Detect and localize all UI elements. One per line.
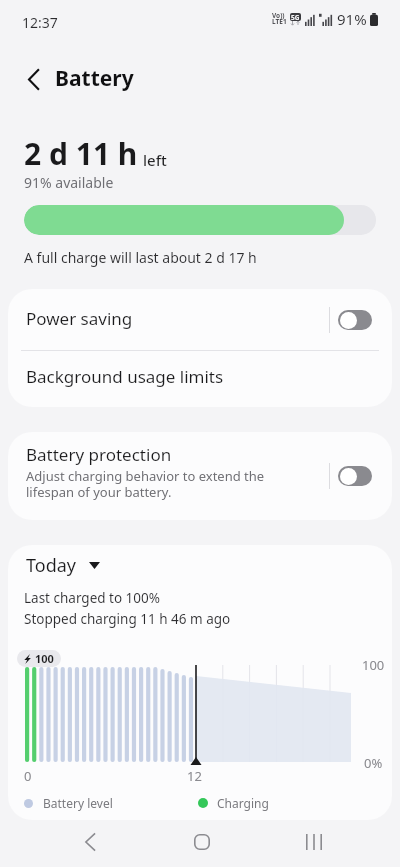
button[interactable]: Power saving [338, 310, 372, 330]
staticText: 12 [187, 767, 202, 785]
staticText: Power saving [26, 307, 133, 330]
staticText: Background usage limits [26, 365, 224, 388]
staticText: 91% available [24, 173, 114, 192]
staticText: 100 [362, 656, 385, 674]
button[interactable]: Back [63, 818, 116, 865]
staticText: Charging [217, 795, 269, 811]
staticText: Battery level [43, 795, 113, 811]
staticText: Battery [55, 64, 134, 93]
staticText: A full charge will last about 2 d 17 h [24, 248, 257, 267]
staticText: LTE1 [272, 17, 287, 26]
staticText: 12:37 [22, 13, 58, 32]
staticText: 100 [35, 651, 54, 666]
button[interactable]: Battery protection [8, 432, 392, 520]
staticText: Battery protection [26, 443, 172, 466]
staticText: Stopped charging 11 h 46 m ago [24, 610, 231, 628]
staticText: 0% [364, 754, 383, 772]
staticText: 2 d 11 h [24, 133, 138, 174]
staticText: 5G [291, 13, 300, 21]
button[interactable]: Navigate up [12, 58, 54, 100]
button[interactable]: Today [20, 549, 110, 582]
staticText: Adjust charging behavior to extend the l… [26, 467, 311, 500]
staticText: 0 [24, 767, 32, 785]
button[interactable]: Background usage limits [8, 351, 392, 407]
button[interactable]: Battery protection [338, 466, 372, 486]
staticText: 91% [337, 9, 367, 29]
staticText: Vo)) [272, 11, 285, 20]
button[interactable]: Recent apps [287, 818, 340, 865]
staticText: Today [26, 553, 76, 578]
button[interactable]: Power saving [8, 289, 392, 350]
staticText: left [143, 150, 167, 170]
button[interactable]: Home [175, 818, 228, 865]
staticText: Last charged to 100% [24, 589, 160, 607]
